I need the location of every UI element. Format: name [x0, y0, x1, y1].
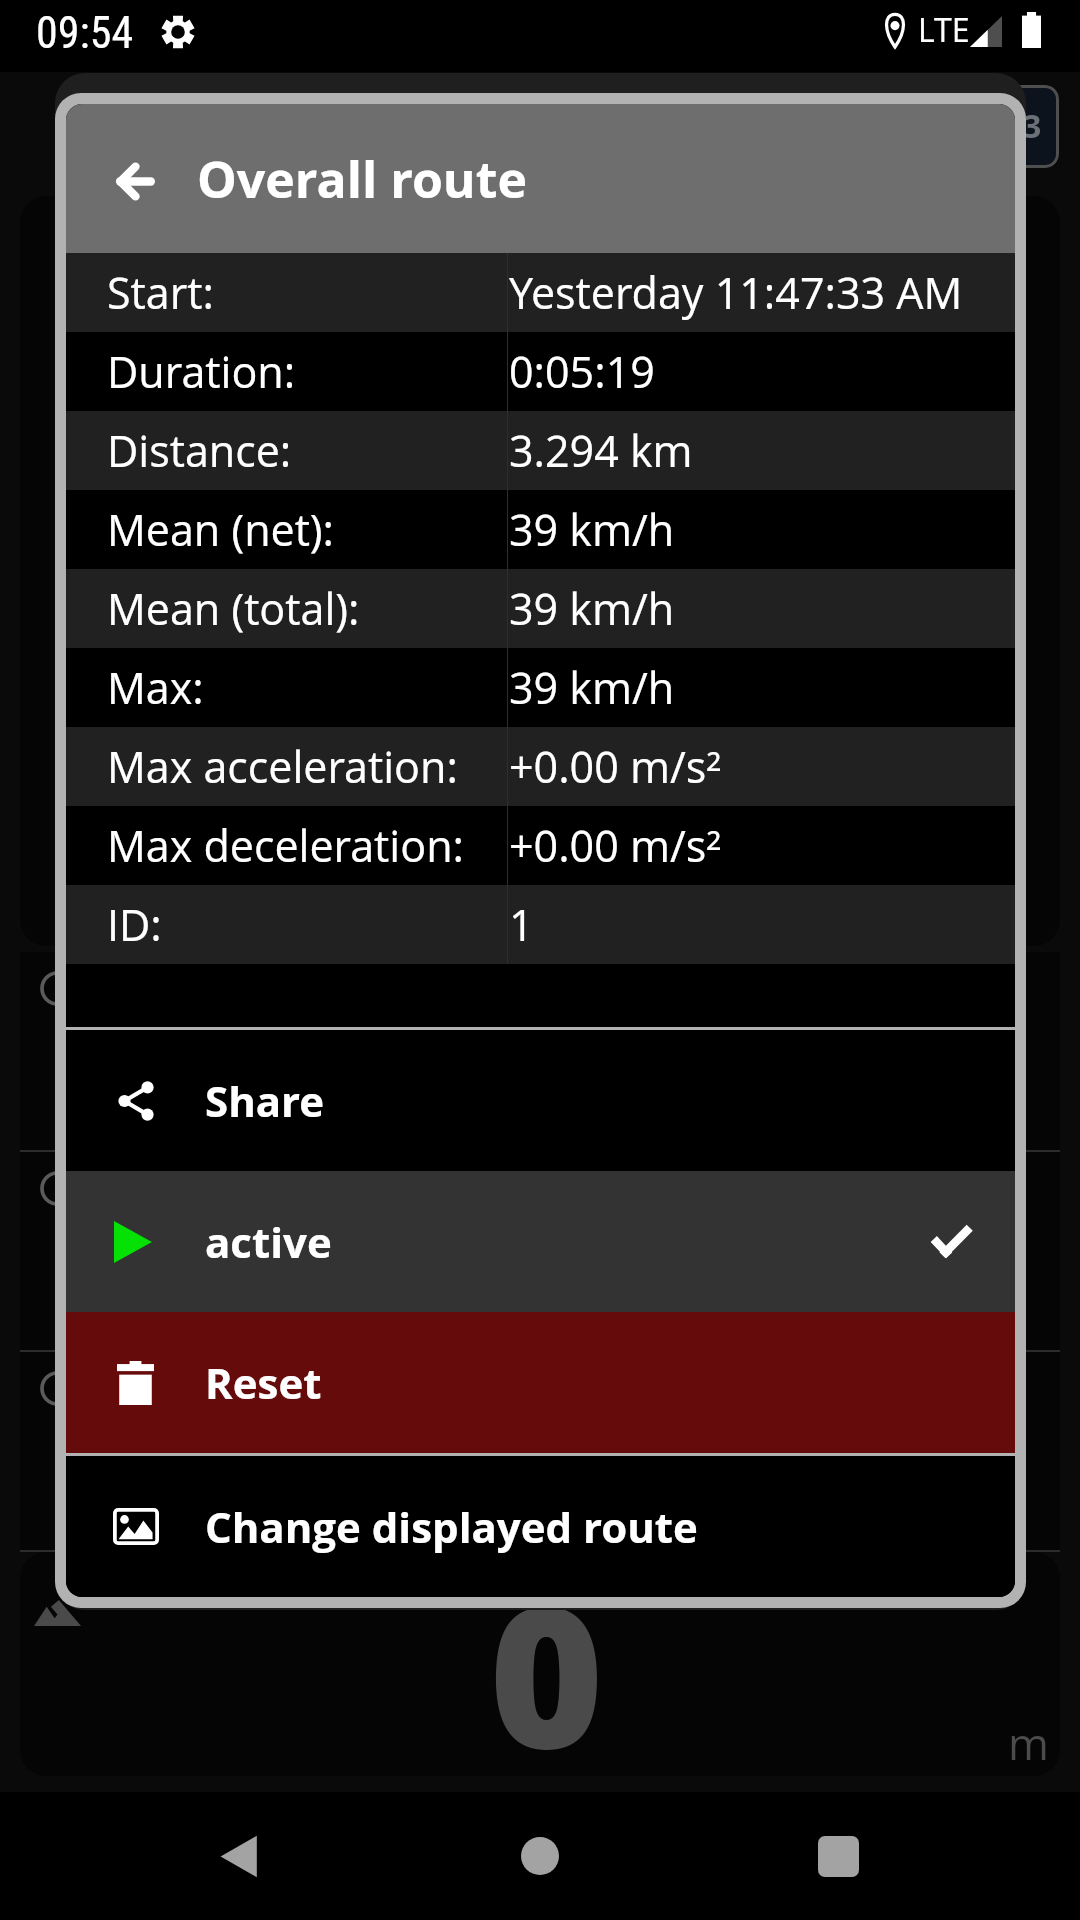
staticText: 3	[1023, 104, 1042, 148]
button[interactable]: Back	[183, 1801, 293, 1911]
staticText: Start:	[107, 263, 507, 322]
button[interactable]: Home	[485, 1801, 595, 1911]
staticText: active	[205, 1213, 332, 1270]
other: Settings	[161, 15, 195, 49]
staticText: Max acceleration:	[107, 737, 507, 796]
staticText: m	[1008, 1713, 1049, 1773]
button[interactable]: Reset	[66, 1312, 1015, 1453]
staticText: Max:	[107, 658, 507, 717]
staticText: 39 km/h	[509, 658, 675, 717]
staticText: Duration:	[107, 342, 507, 401]
staticText: Change displayed route	[205, 1498, 698, 1555]
button[interactable]: Back	[99, 143, 171, 215]
staticText: ID:	[107, 895, 507, 954]
staticText: Mean (net):	[107, 500, 507, 559]
staticText: Max deceleration:	[107, 816, 507, 875]
button[interactable]: Recent apps	[783, 1801, 893, 1911]
staticText: +0.00 m/s²	[509, 737, 722, 796]
button[interactable]: Back	[66, 104, 1015, 253]
staticText: Yesterday 11:47:33 AM	[509, 263, 963, 322]
staticText: 09:54	[36, 7, 134, 59]
staticText: Overall route	[197, 145, 527, 213]
staticText: LTE	[918, 8, 970, 52]
staticText: 39 km/h	[509, 500, 675, 559]
staticText: 0:05:19	[509, 342, 655, 401]
button[interactable]: Change displayed route	[66, 1456, 1015, 1597]
button[interactable]: active	[66, 1171, 1015, 1312]
staticText: Distance:	[107, 421, 507, 480]
staticText: +0.00 m/s²	[509, 816, 722, 875]
staticText: 3.294 km	[509, 421, 693, 480]
button[interactable]: Share	[66, 1030, 1015, 1171]
staticText: 0	[100, 665, 232, 971]
staticText: Share	[205, 1072, 325, 1129]
staticText: 0	[489, 1539, 604, 1806]
staticText: Reset	[205, 1354, 322, 1411]
staticText: 39 km/h	[509, 579, 675, 638]
staticText: 1	[509, 895, 534, 954]
staticText: Mean (total):	[107, 579, 507, 638]
